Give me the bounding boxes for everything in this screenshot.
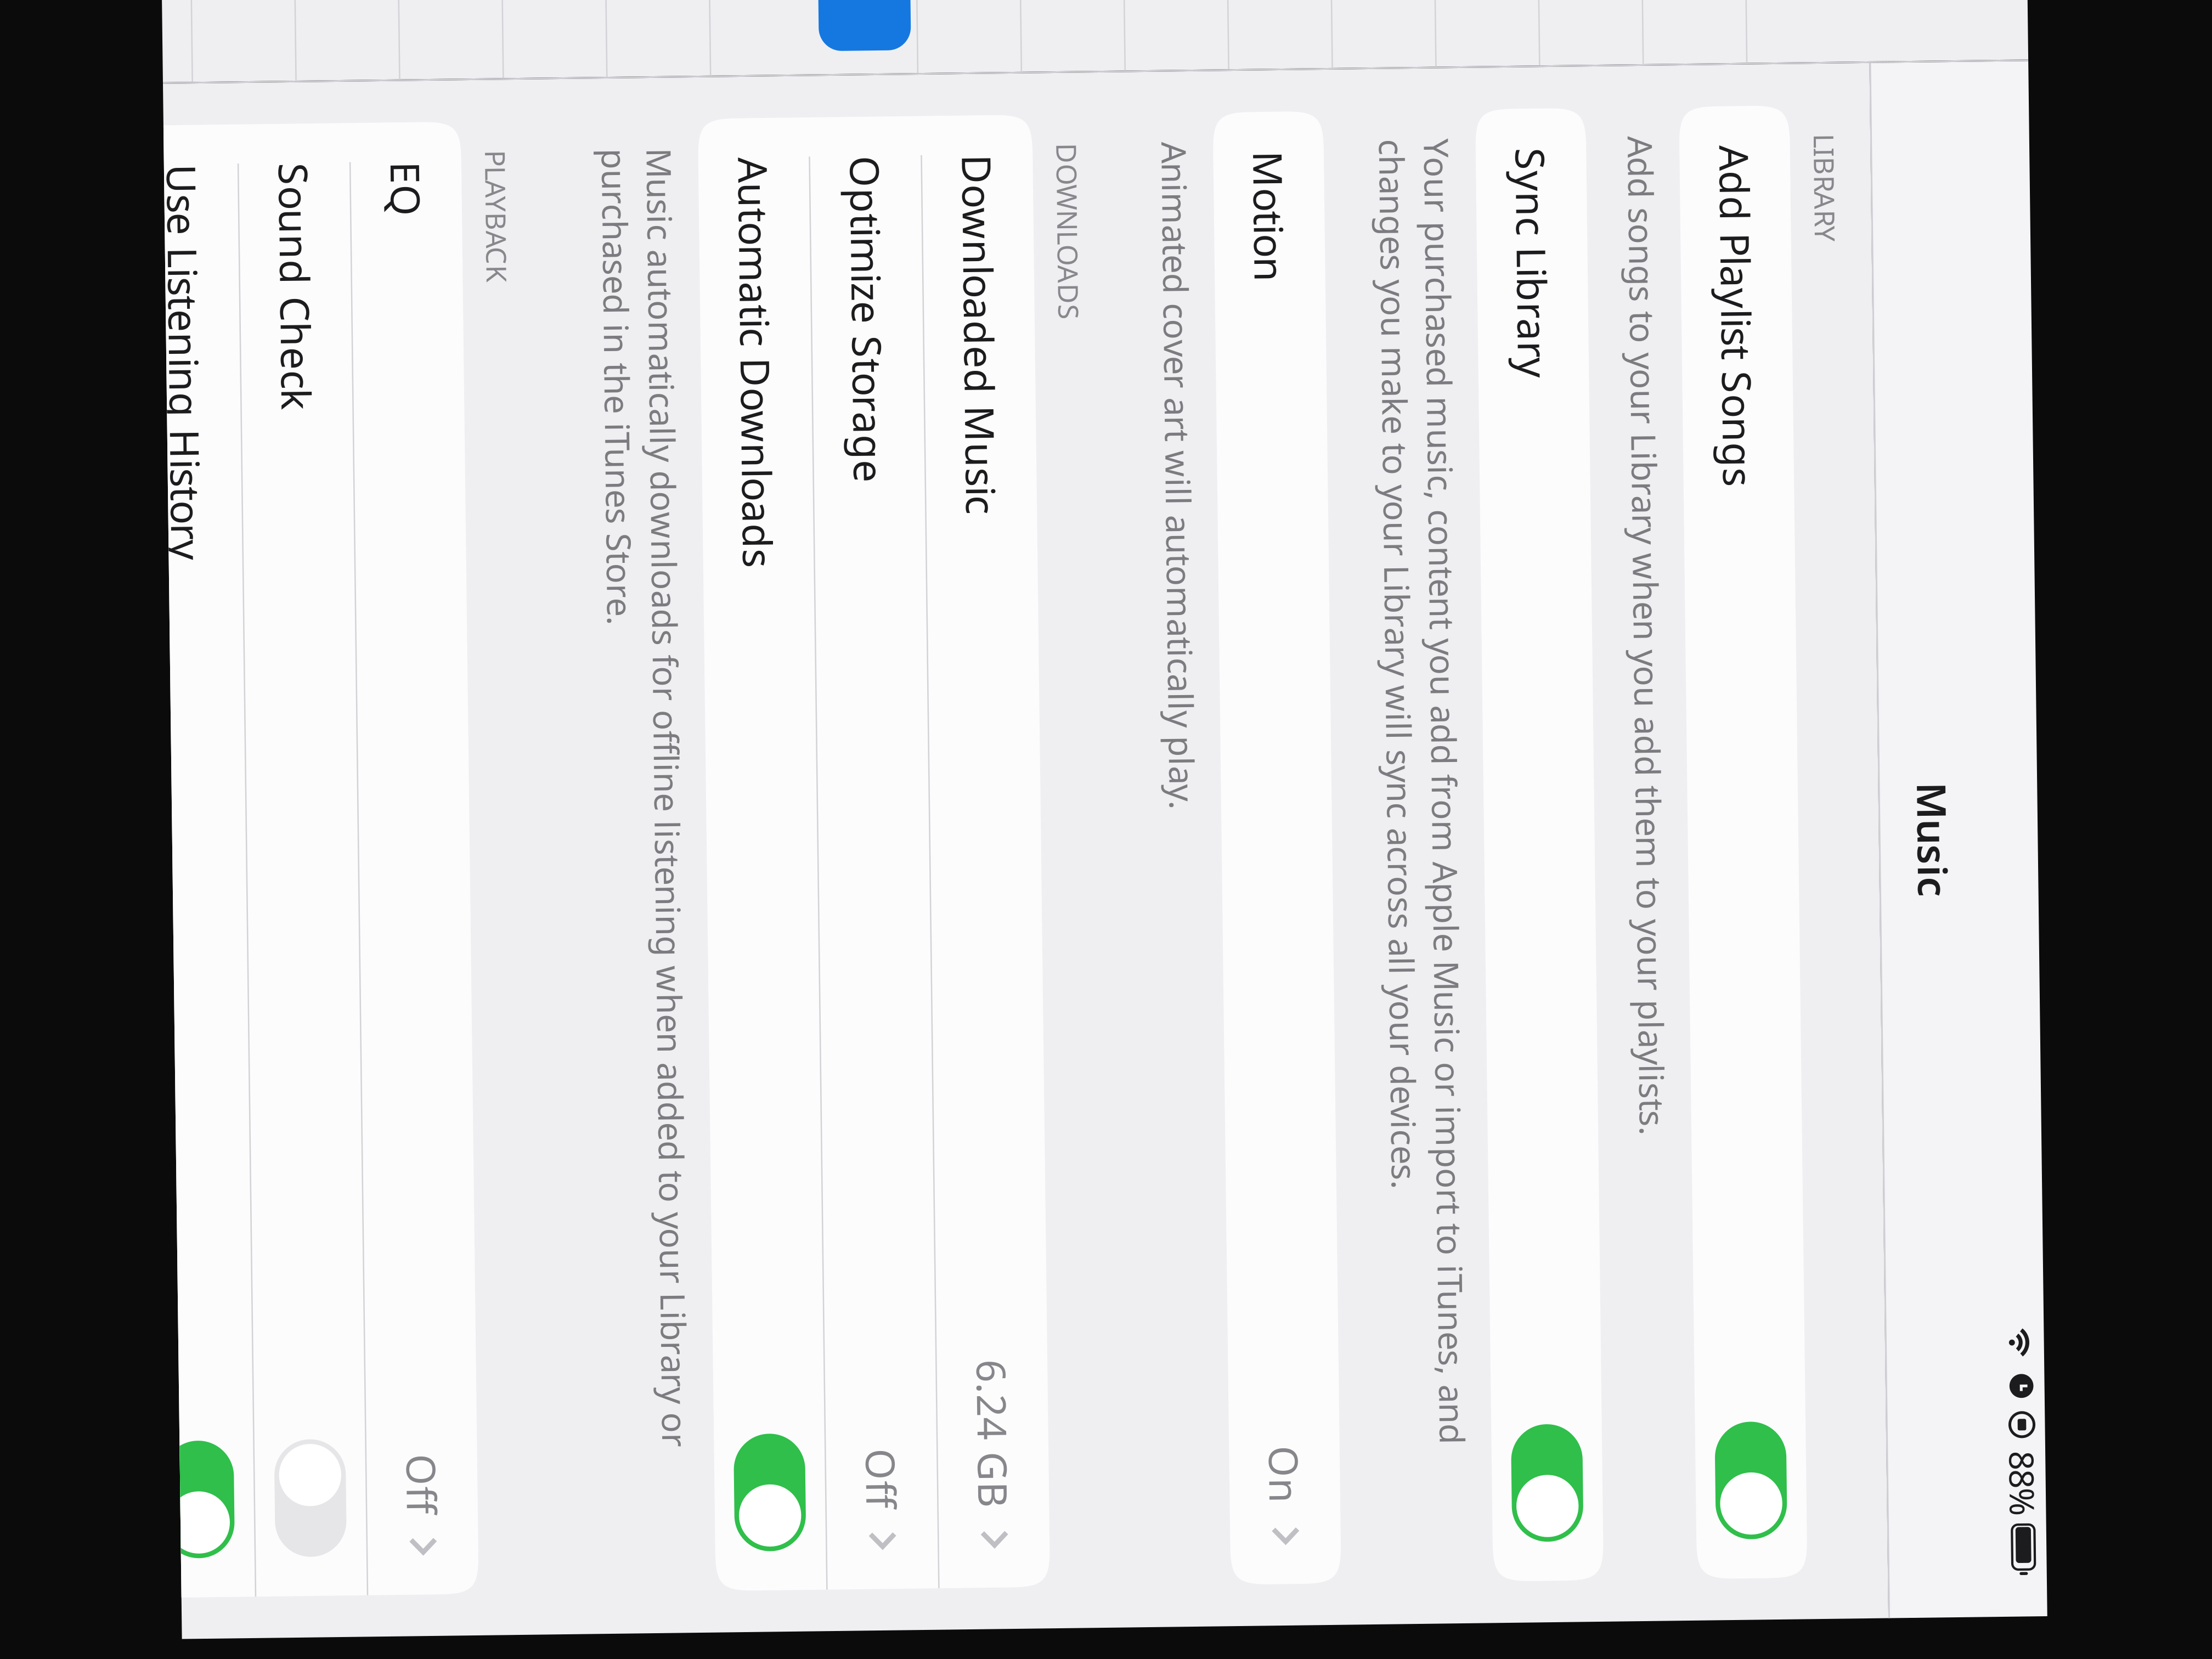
button[interactable]: Books [803,525,1025,550]
button[interactable]: Sync Library [1035,267,1386,294]
button[interactable]: EQ [1035,535,1386,562]
button[interactable]: Motion [1035,330,1386,356]
button[interactable]: App Store [803,402,1025,427]
button[interactable]: Battery [803,352,1025,377]
button[interactable]: Touch ID & Passcode [803,328,1025,352]
button[interactable]: Music [803,427,1025,451]
staticText: LIBRARY [1042,206,1068,215]
staticText: Add songs to your Library when you add t… [1042,249,1280,260]
staticText: Sync Library [1044,274,1099,287]
staticText: Music [1197,180,1224,193]
button[interactable]: Add Playlist Songs [1035,219,1386,245]
button[interactable]: Photos [803,476,1025,501]
button[interactable]: Use Listening History [1035,589,1386,615]
button[interactable]: Downloaded Music [1035,399,1386,426]
button[interactable]: Privacy & Security [803,377,1025,402]
button[interactable]: Accessibility [803,229,1025,254]
staticText: Animated cover art will automatically pl… [1042,360,1201,371]
button[interactable]: Sound Check [1035,562,1386,588]
button[interactable]: Wallpaper [803,254,1025,278]
button[interactable]: Podcasts [803,550,1025,575]
button[interactable]: Siri & Search [803,278,1025,303]
button[interactable]: Camera [803,501,1025,525]
staticText: Your purchased music, content you add fr… [1042,298,1353,319]
staticText: Music automatically downloads for offlin… [1042,483,1351,504]
button[interactable]: Optimize Storage [1035,426,1386,452]
button[interactable]: General [803,204,1025,229]
button[interactable]: Automatic Downloads [1035,453,1386,479]
staticText: Add Playlist Songs [1044,226,1126,238]
button[interactable]: TV [803,451,1025,476]
button[interactable]: Apple Pencil [803,303,1025,328]
button[interactable]: Game Center [803,575,1025,599]
